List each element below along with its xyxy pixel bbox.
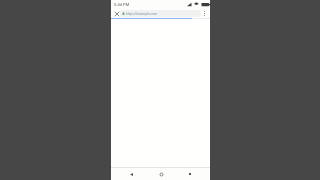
button[interactable]: Recent apps <box>181 168 199 180</box>
button[interactable]: https://example.com <box>120 10 201 17</box>
button[interactable]: Close <box>113 10 120 17</box>
staticText: https://example.com <box>126 12 158 16</box>
button[interactable]: More options <box>201 10 208 17</box>
button[interactable]: Home <box>152 168 170 180</box>
button[interactable]: Back <box>122 168 140 180</box>
staticText: 5:44 PM <box>114 2 130 7</box>
